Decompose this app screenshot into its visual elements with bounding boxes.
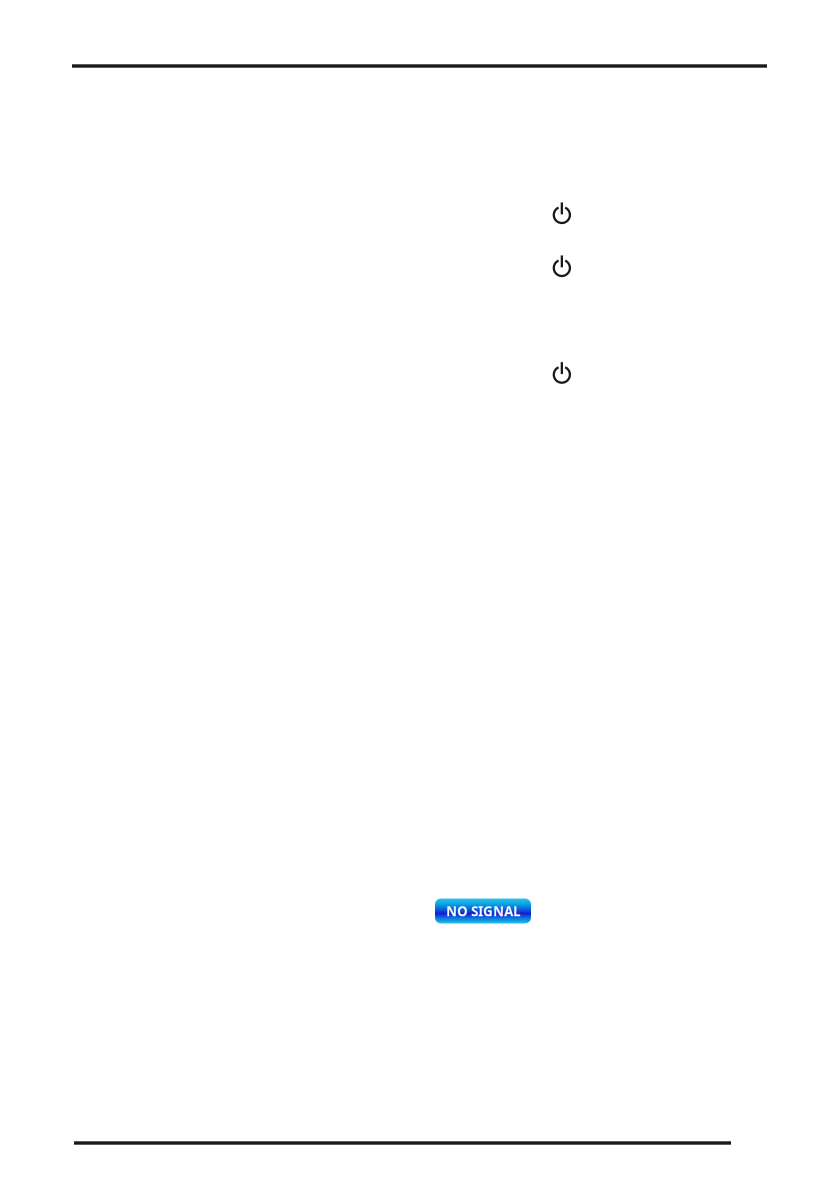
button[interactable]: Power (551, 361, 574, 384)
button[interactable]: NO SIGNAL (435, 898, 531, 923)
button[interactable]: Power (551, 201, 574, 224)
button[interactable]: Power (551, 254, 574, 277)
staticText: NO SIGNAL (446, 902, 520, 920)
